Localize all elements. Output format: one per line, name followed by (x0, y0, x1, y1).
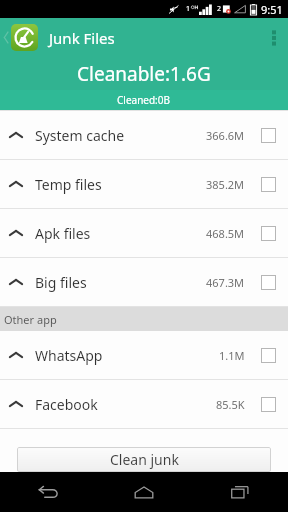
button[interactable]: Back (18, 472, 78, 512)
staticText: WhatsApp (35, 346, 103, 365)
staticText: 1 (186, 4, 191, 14)
staticText: Junk Files (49, 28, 115, 48)
button[interactable]: Select Apk files (256, 221, 280, 245)
button[interactable]: Navigate up (0, 18, 40, 57)
staticText: Big files (35, 273, 87, 292)
staticText: 468.5M (206, 226, 245, 241)
staticText: Cleaned:0B (117, 93, 171, 107)
staticText: Apk files (35, 224, 91, 243)
staticText: 385.2M (206, 177, 245, 192)
staticText: Temp files (35, 175, 102, 194)
staticText: 85.5K (216, 397, 245, 412)
button[interactable]: System cache (0, 111, 288, 159)
button[interactable]: Facebook (0, 380, 288, 428)
staticText: Other app (4, 312, 57, 327)
staticText: 9:51 (261, 2, 283, 17)
staticText: System cache (35, 126, 125, 145)
staticText: 366.6M (206, 128, 245, 143)
button[interactable]: More options (260, 18, 288, 57)
button[interactable]: Apk files (0, 209, 288, 257)
button[interactable]: Select Big files (256, 270, 280, 294)
button[interactable]: Select Temp files (256, 172, 280, 196)
button[interactable]: Select System cache (256, 123, 280, 147)
button[interactable]: Clean junk (17, 447, 271, 472)
staticText: Cleanable:1.6G (77, 61, 211, 87)
button[interactable]: Big files (0, 258, 288, 306)
button[interactable]: Recent apps (210, 472, 270, 512)
button[interactable]: Temp files (0, 160, 288, 208)
staticText: 2 (217, 4, 222, 14)
button[interactable]: Select Facebook (256, 392, 280, 416)
button[interactable]: Select WhatsApp (256, 343, 280, 367)
staticText: Facebook (35, 395, 98, 414)
staticText: 467.3M (206, 275, 245, 290)
staticText: Clean junk (110, 450, 179, 469)
button[interactable]: Home (114, 472, 174, 512)
button[interactable]: WhatsApp (0, 331, 288, 379)
staticText: 1.1M (219, 348, 245, 363)
